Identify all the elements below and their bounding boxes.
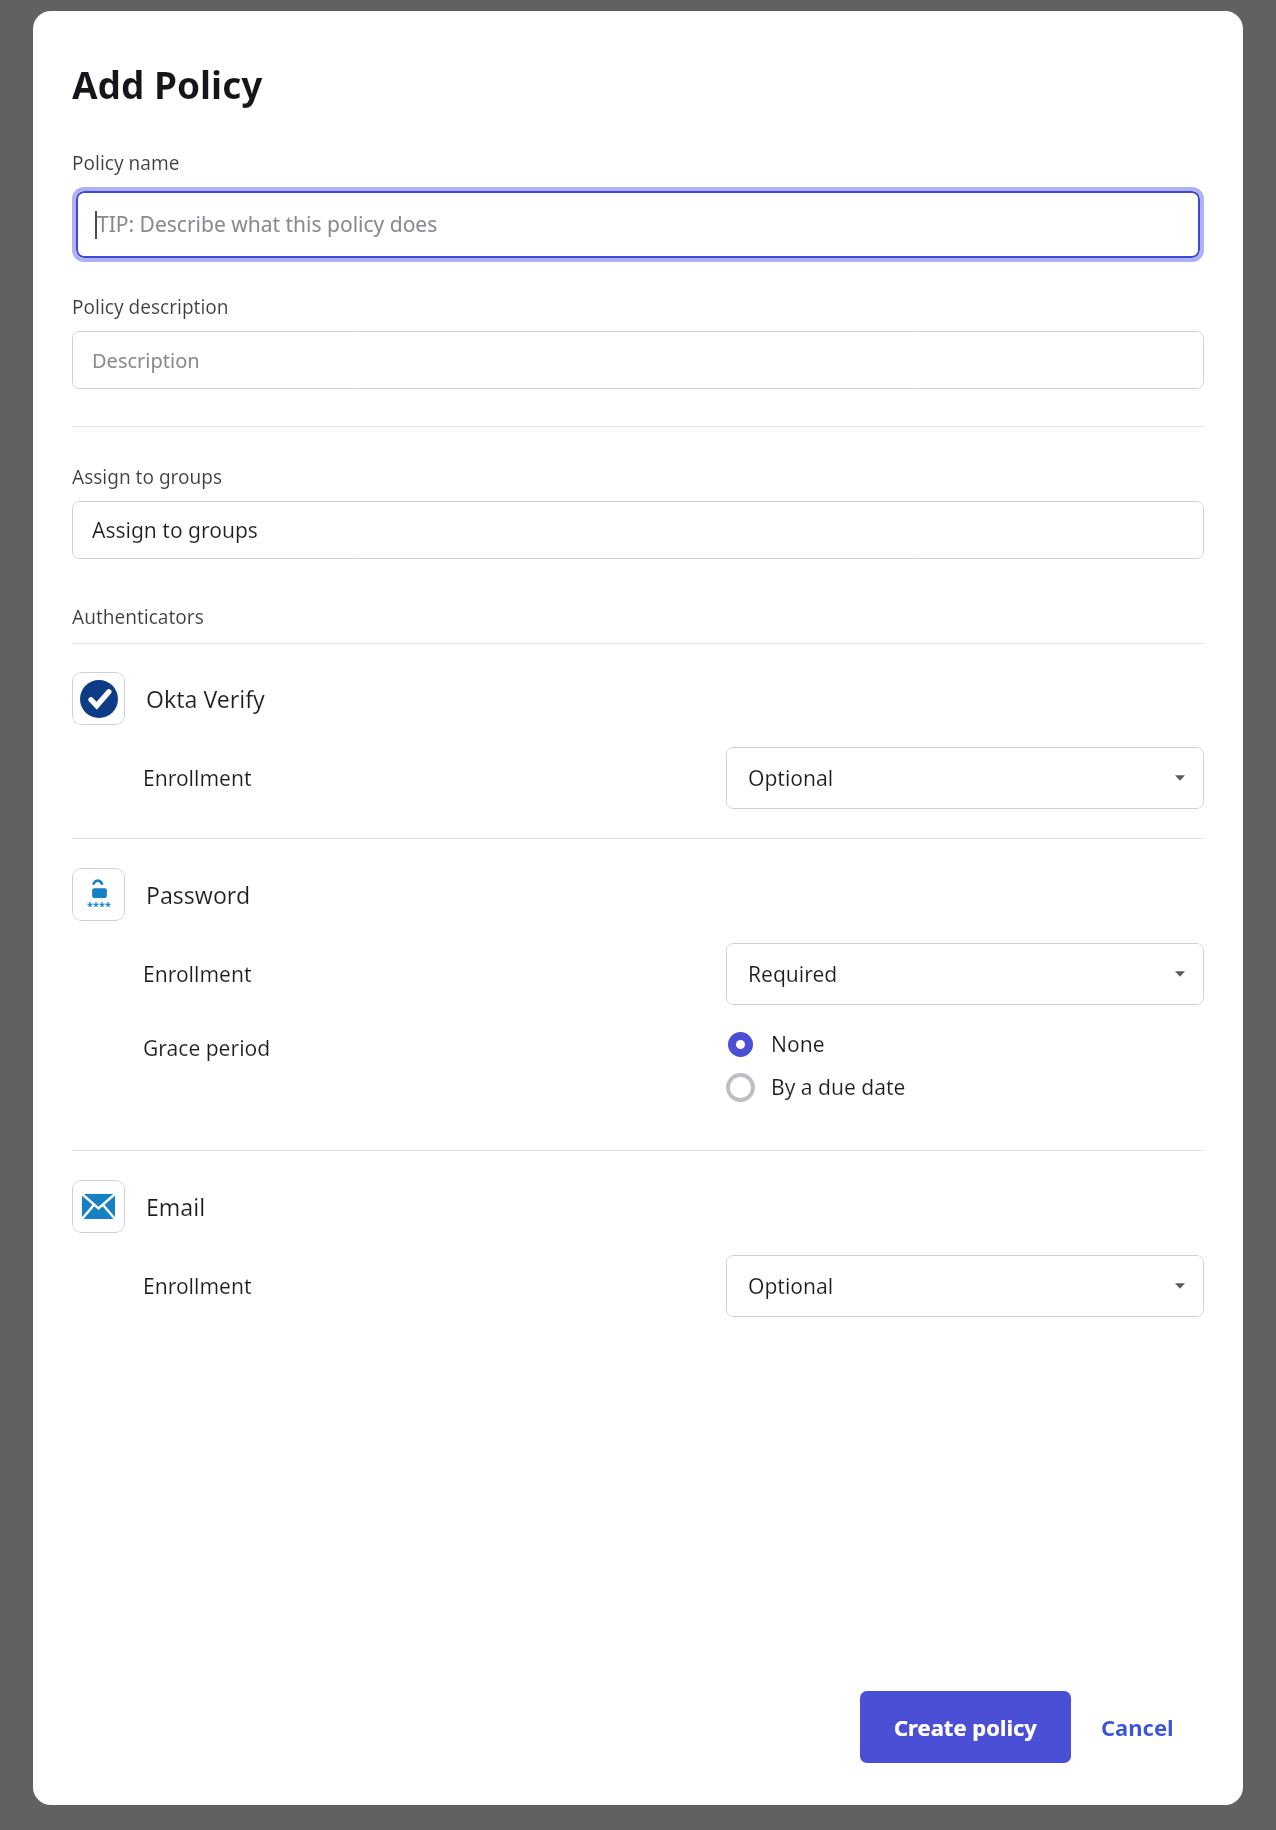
- button[interactable]: Create policy: [860, 1691, 1071, 1763]
- staticText: Enrollment: [143, 1272, 252, 1301]
- staticText: Enrollment: [143, 764, 252, 793]
- staticText: Add Policy: [72, 59, 263, 109]
- staticText: Required: [748, 960, 838, 989]
- staticText: Email: [146, 1191, 206, 1222]
- staticText: Description: [92, 347, 200, 374]
- staticText: Grace period: [143, 1034, 271, 1063]
- button[interactable]: TIP: Describe what this policy does: [76, 191, 1200, 258]
- staticText: Enrollment: [143, 960, 252, 989]
- staticText: Optional: [748, 1272, 834, 1301]
- staticText: Assign to groups: [92, 516, 258, 545]
- staticText: TIP: Describe what this policy does: [97, 210, 438, 239]
- other: Password: [72, 868, 125, 921]
- button[interactable]: Optional: [726, 747, 1204, 809]
- staticText: Optional: [748, 764, 834, 793]
- staticText: Policy description: [72, 294, 229, 320]
- button[interactable]: Assign to groups: [72, 501, 1204, 559]
- staticText: Create policy: [894, 1712, 1037, 1742]
- staticText: Policy name: [72, 150, 180, 176]
- button[interactable]: None: [726, 1026, 825, 1063]
- staticText: Cancel: [1101, 1712, 1174, 1742]
- staticText: Okta Verify: [146, 683, 265, 714]
- staticText: Assign to groups: [72, 464, 223, 490]
- button[interactable]: Description: [72, 331, 1204, 389]
- staticText: ****: [87, 898, 111, 913]
- other: Okta Verify: [72, 672, 125, 725]
- staticText: Authenticators: [72, 604, 204, 630]
- button[interactable]: Cancel: [1071, 1691, 1204, 1763]
- button[interactable]: Optional: [726, 1255, 1204, 1317]
- staticText: By a due date: [771, 1073, 906, 1102]
- staticText: Password: [146, 879, 251, 910]
- staticText: None: [771, 1030, 825, 1059]
- other: Email: [72, 1180, 125, 1233]
- button[interactable]: Required: [726, 943, 1204, 1005]
- button[interactable]: By a due date: [726, 1069, 906, 1106]
